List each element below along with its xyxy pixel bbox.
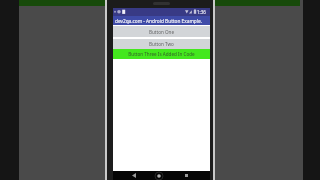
button[interactable]: Recents	[180, 171, 192, 180]
staticText: dev2qa.com - Android Button Example.	[115, 18, 202, 24]
staticText: Button One	[149, 29, 174, 35]
staticText: Button Two	[149, 41, 174, 47]
button[interactable]: Button Three Is Added In Code	[113, 49, 210, 59]
staticText: Button Three Is Added In Code	[128, 51, 195, 57]
button[interactable]: Button One	[113, 26, 210, 37]
staticText: 1:36	[197, 9, 206, 15]
button[interactable]: Home	[153, 171, 165, 180]
button[interactable]: Button Two	[113, 39, 210, 49]
button[interactable]: Back	[128, 171, 140, 180]
